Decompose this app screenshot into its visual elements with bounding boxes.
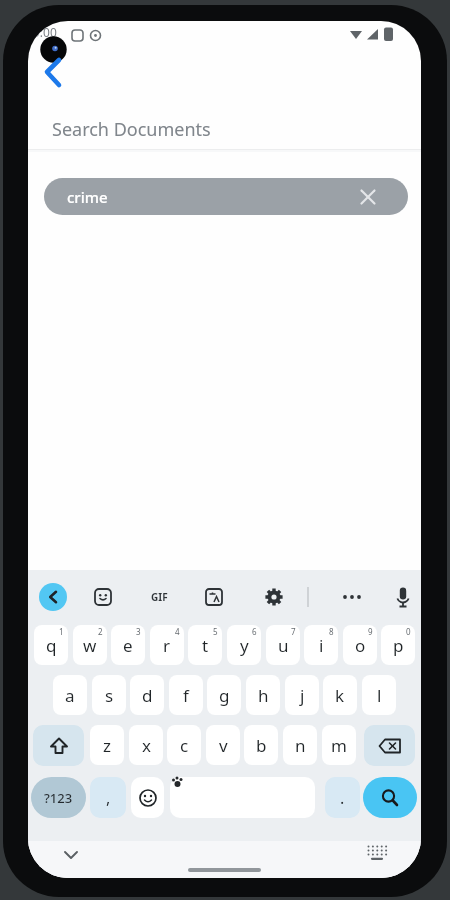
button[interactable]: b (244, 725, 278, 765)
staticText: u (278, 634, 289, 657)
button[interactable]: o (343, 625, 377, 665)
button[interactable]: p (381, 625, 415, 665)
button[interactable] (36, 51, 72, 93)
staticText: 0 (406, 626, 411, 637)
staticText: . (340, 787, 345, 809)
button[interactable] (340, 586, 364, 608)
staticText: r (163, 634, 171, 657)
button[interactable]: t (188, 625, 222, 665)
staticText: 3 (136, 626, 141, 637)
button[interactable] (356, 185, 380, 209)
button[interactable] (39, 583, 67, 611)
staticText: 2 (98, 626, 103, 637)
button[interactable] (263, 586, 285, 608)
button[interactable]: GIF (145, 586, 173, 608)
staticText: i (319, 634, 324, 657)
button[interactable]: f (169, 675, 203, 715)
button[interactable]: n (283, 725, 317, 765)
staticText: y (240, 634, 249, 657)
staticText: k (335, 684, 345, 707)
staticText: ?123 (44, 789, 73, 807)
button[interactable]: x (129, 725, 163, 765)
button[interactable]: c (167, 725, 201, 765)
button[interactable]: z (90, 725, 124, 765)
staticText: crime (67, 187, 108, 207)
staticText: p (393, 634, 404, 657)
button[interactable]: v (206, 725, 240, 765)
button[interactable]: j (285, 675, 319, 715)
button[interactable]: h (246, 675, 280, 715)
button[interactable]: , (90, 777, 126, 818)
button[interactable]: s (92, 675, 126, 715)
button[interactable] (364, 725, 415, 766)
button[interactable]: w (73, 625, 107, 665)
staticText: b (256, 734, 267, 757)
button[interactable]: m (322, 725, 356, 765)
staticText: f (183, 684, 189, 707)
button[interactable]: i (304, 625, 338, 665)
button[interactable]: q (34, 625, 68, 665)
button[interactable]: l (362, 675, 396, 715)
staticText: 5 (213, 626, 218, 637)
staticText: a (65, 684, 75, 707)
button[interactable] (363, 777, 417, 818)
button[interactable] (92, 586, 114, 608)
button[interactable] (392, 585, 414, 610)
button[interactable]: g (207, 675, 241, 715)
staticText: e (123, 634, 133, 657)
staticText: l (377, 684, 382, 707)
button[interactable]: d (130, 675, 164, 715)
staticText: 8 (329, 626, 334, 637)
button[interactable]: k (323, 675, 357, 715)
button[interactable]: a (53, 675, 87, 715)
staticText: GIF (151, 590, 168, 604)
button[interactable] (170, 777, 315, 818)
staticText: z (103, 734, 111, 757)
staticText: o (355, 634, 366, 657)
button[interactable]: . (325, 777, 360, 818)
staticText: q (46, 634, 57, 657)
button[interactable]: ?123 (31, 777, 86, 818)
staticText: 9:00 (33, 24, 57, 40)
button[interactable] (33, 725, 84, 766)
staticText: n (295, 734, 306, 757)
staticText: 9 (368, 626, 373, 637)
button[interactable] (131, 777, 164, 818)
button[interactable]: crime (44, 178, 408, 215)
button[interactable] (56, 841, 86, 871)
staticText: 7 (291, 626, 296, 637)
staticText: 1 (59, 626, 64, 637)
button[interactable] (362, 841, 392, 867)
staticText: c (180, 734, 189, 757)
staticText: h (258, 684, 269, 707)
button[interactable]: e (111, 625, 145, 665)
staticText: m (331, 734, 347, 757)
staticText: j (300, 684, 305, 707)
staticText: d (142, 684, 153, 707)
staticText: v (219, 734, 228, 757)
staticText: s (105, 684, 114, 707)
staticText: w (83, 634, 97, 657)
button[interactable] (203, 586, 225, 608)
staticText: g (219, 684, 230, 707)
button[interactable]: u (266, 625, 300, 665)
staticText: Search Documents (52, 117, 211, 142)
button[interactable]: r (150, 625, 184, 665)
button[interactable]: y (227, 625, 261, 665)
staticText: x (142, 734, 151, 757)
staticText: 4 (175, 626, 180, 637)
staticText: t (202, 634, 209, 657)
staticText: 6 (252, 626, 257, 637)
staticText: , (106, 787, 111, 809)
